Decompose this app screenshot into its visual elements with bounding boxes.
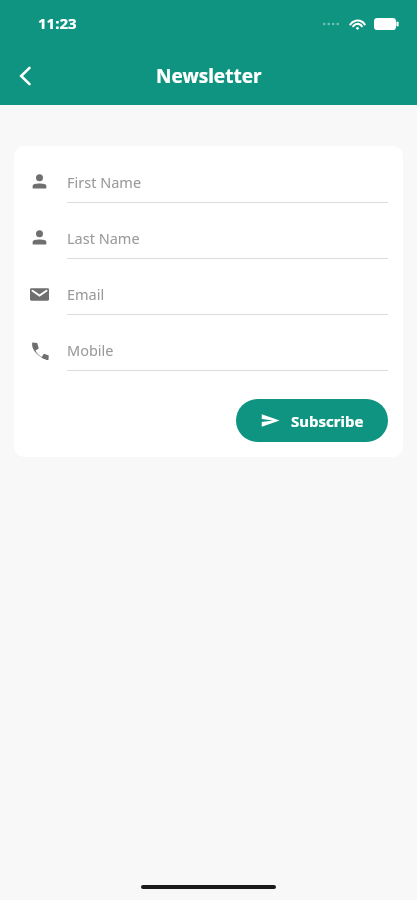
staticText: Subscribe <box>291 411 364 431</box>
staticText: First Name <box>67 172 142 192</box>
staticText: Mobile <box>67 340 114 360</box>
button[interactable]: Back <box>4 54 48 98</box>
staticText: 11:23 <box>38 13 77 33</box>
button[interactable]: Subscribe <box>236 399 388 442</box>
staticText: Last Name <box>67 228 140 248</box>
staticText: Newsletter <box>156 63 262 89</box>
staticText: Email <box>67 284 105 304</box>
